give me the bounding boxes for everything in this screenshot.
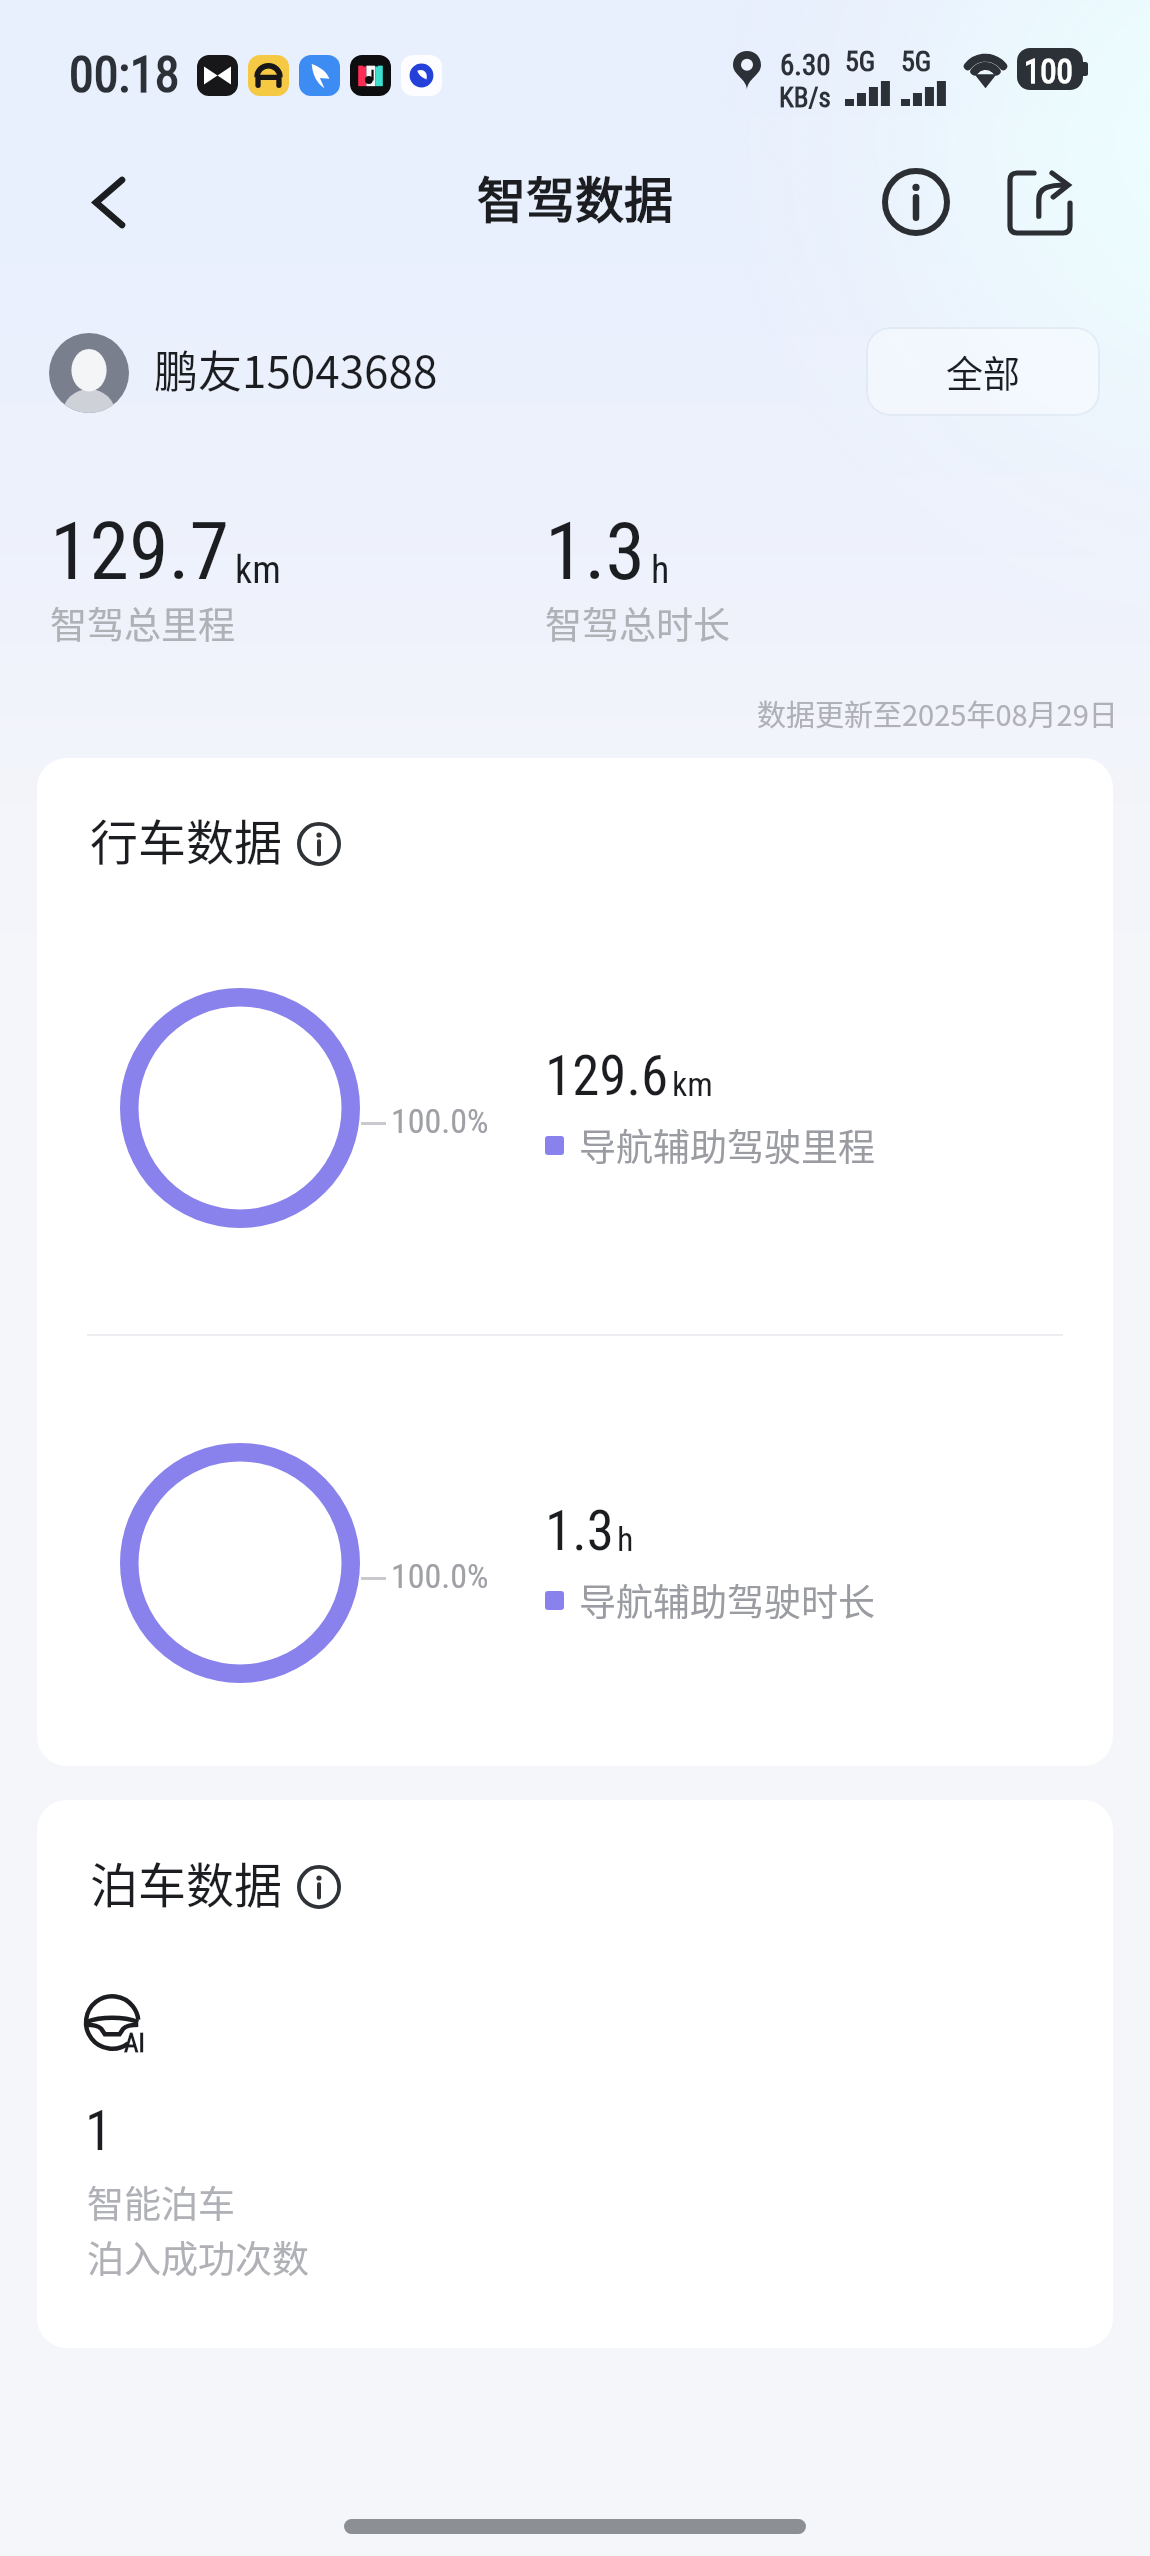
staticText: 5G (845, 45, 876, 78)
staticText: 129.6 (545, 1044, 669, 1108)
staticText: 129.7 (50, 505, 230, 599)
staticText: 全部 (946, 345, 1020, 399)
button[interactable]: 全部 (866, 327, 1100, 416)
staticText: 00:18 (69, 46, 180, 105)
staticText: 导航辅助驾驶里程 (579, 1118, 875, 1172)
staticText: 智能泊车 (87, 2175, 235, 2229)
staticText: KB/s (779, 82, 831, 114)
button[interactable]: Info (872, 158, 960, 246)
staticText: AI (124, 2029, 145, 2058)
staticText: km (672, 1064, 713, 1104)
button[interactable]: Share (996, 159, 1084, 247)
staticText: 泊入成功次数 (87, 2230, 309, 2284)
staticText: h (651, 548, 670, 593)
staticText: 数据更新至2025年08月29日 (757, 692, 1118, 734)
staticText: km (235, 548, 281, 593)
staticText: 100.0% (391, 1556, 489, 1596)
staticText: 1.3 (545, 505, 646, 599)
staticText: 1 (85, 2099, 113, 2163)
button[interactable]: Back (66, 159, 152, 245)
staticText: 导航辅助驾驶时长 (579, 1573, 875, 1627)
staticText: 智驾总时长 (545, 596, 730, 650)
staticText: 1.3 (545, 1499, 614, 1563)
staticText: 智驾总里程 (50, 596, 235, 650)
button[interactable]: About driving data (297, 822, 341, 866)
staticText: 100 (1024, 52, 1073, 91)
staticText: 行车数据 (90, 804, 283, 874)
button[interactable]: About parking data (297, 1865, 341, 1909)
staticText: 100.0% (391, 1101, 489, 1141)
staticText: 鹏友15043688 (154, 337, 438, 401)
staticText: 智驾数据 (477, 161, 674, 232)
button[interactable]: 鹏友15043688 (49, 333, 438, 413)
staticText: 6.30 (780, 48, 831, 82)
staticText: 泊车数据 (90, 1847, 283, 1917)
staticText: h (617, 1519, 634, 1559)
staticText: 5G (901, 45, 932, 78)
